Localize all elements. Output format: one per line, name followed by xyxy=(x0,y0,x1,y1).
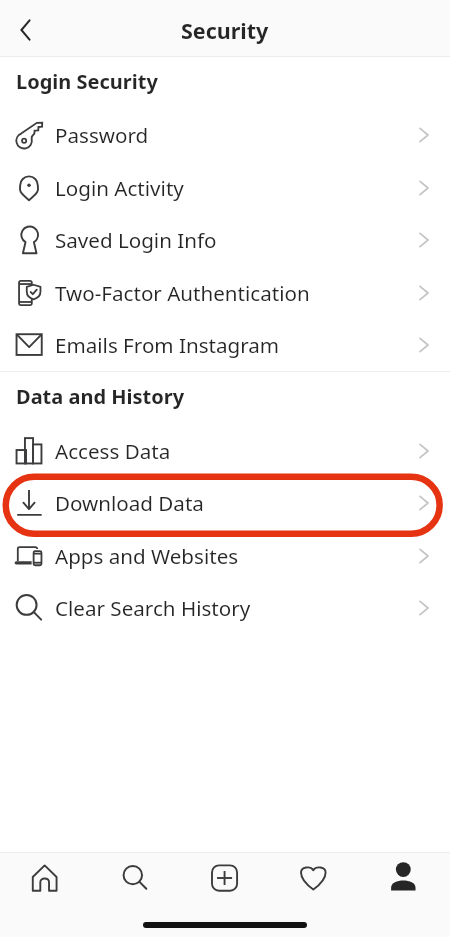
button[interactable]: Download Data xyxy=(0,476,450,529)
staticText: Emails From Instagram xyxy=(55,331,280,359)
staticText: Two-Factor Authentication xyxy=(55,279,310,307)
staticText: Apps and Websites xyxy=(55,542,239,570)
staticText: Download Data xyxy=(55,489,204,517)
staticText: Data and History xyxy=(16,383,185,410)
staticText: Access Data xyxy=(55,437,171,465)
button[interactable]: Login Activity xyxy=(0,161,450,214)
button[interactable]: Apps and Websites xyxy=(0,529,450,582)
staticText: Clear Search History xyxy=(55,594,251,622)
button[interactable]: Access Data xyxy=(0,424,450,477)
button[interactable]: Emails From Instagram xyxy=(0,318,450,371)
button[interactable]: Profile xyxy=(360,853,450,902)
staticText: Password xyxy=(55,121,149,149)
button[interactable]: Activity xyxy=(270,853,360,902)
staticText: Saved Login Info xyxy=(55,226,217,254)
button[interactable]: Two-Factor Authentication xyxy=(0,266,450,319)
button[interactable]: Password xyxy=(0,108,450,161)
button[interactable]: Clear Search History xyxy=(0,581,450,634)
button[interactable]: Saved Login Info xyxy=(0,213,450,266)
button[interactable]: Back xyxy=(0,0,49,56)
staticText: Security xyxy=(181,16,269,45)
button[interactable]: Create xyxy=(180,853,270,902)
button[interactable]: Search xyxy=(90,853,180,902)
staticText: Login Security xyxy=(16,68,158,95)
button[interactable]: Home xyxy=(0,853,90,902)
staticText: Login Activity xyxy=(55,174,184,202)
